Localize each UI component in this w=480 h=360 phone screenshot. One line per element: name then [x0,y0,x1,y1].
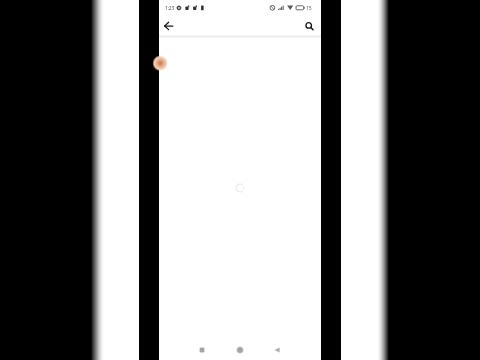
button[interactable]: Search [299,15,319,37]
staticText: 1:23 [165,5,175,12]
button[interactable]: Back [266,339,288,360]
staticText: 15 [306,5,312,12]
button[interactable]: Recents [191,339,213,360]
button[interactable]: Home [229,339,251,360]
button[interactable]: Back [160,15,180,37]
